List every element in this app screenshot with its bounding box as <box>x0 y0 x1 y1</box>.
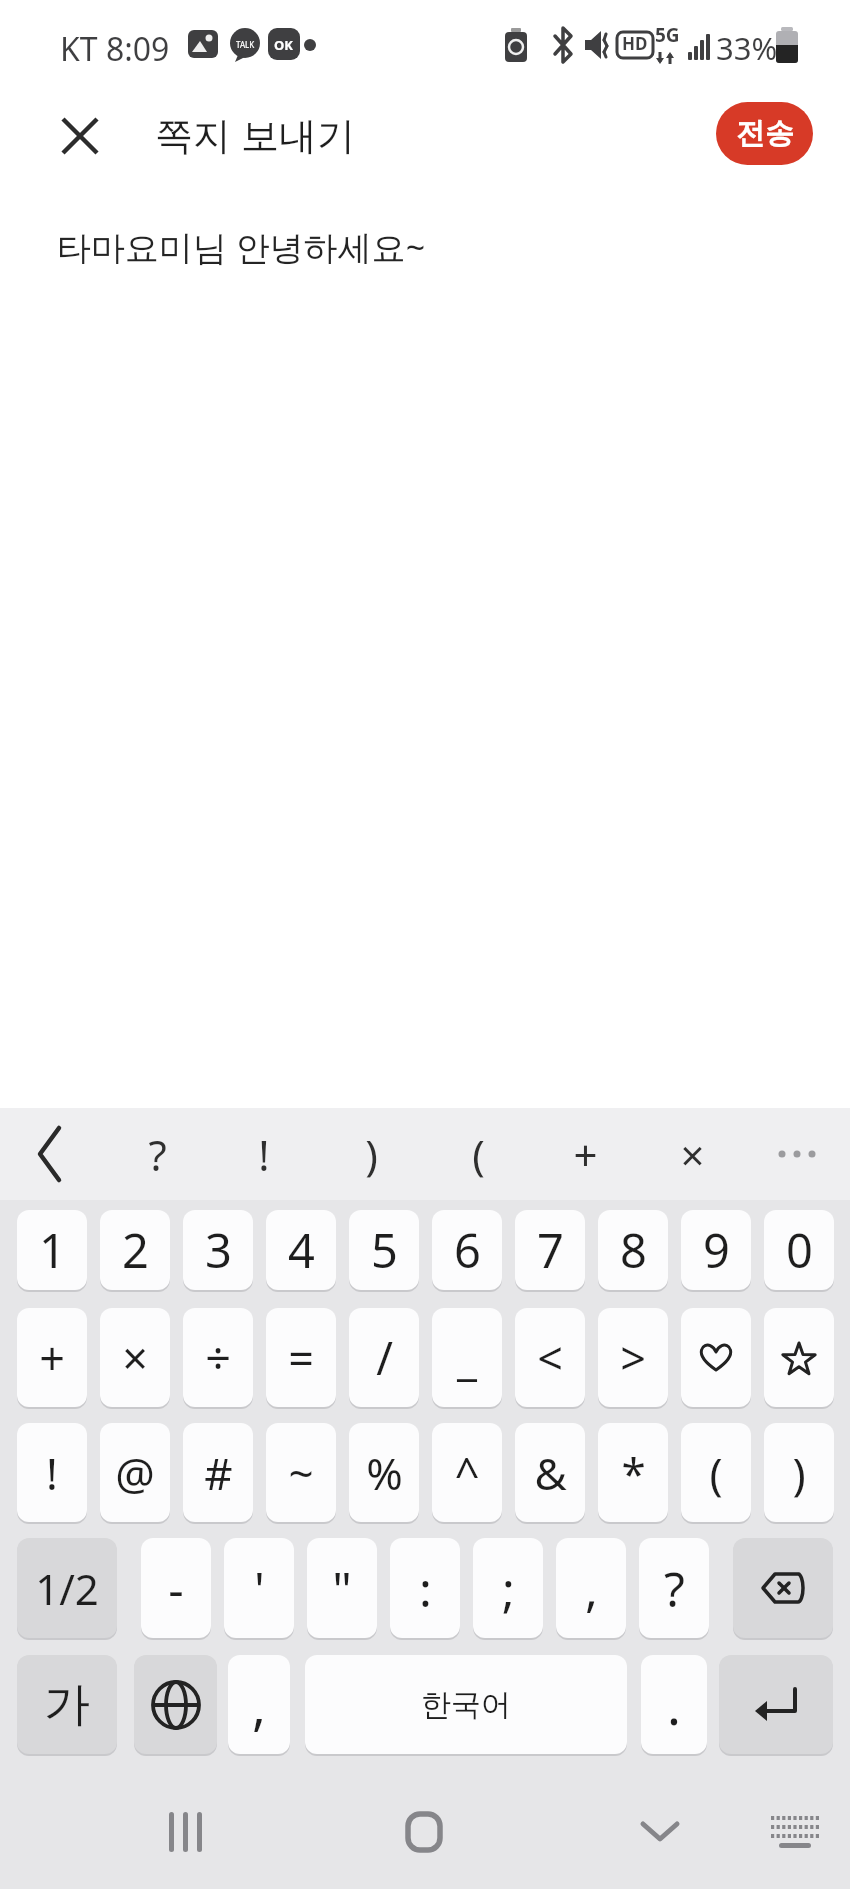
staticText: 8 <box>620 1218 647 1282</box>
button[interactable]: ? <box>639 1538 709 1638</box>
staticText: - <box>168 1556 184 1621</box>
button[interactable]: % <box>349 1423 419 1522</box>
button[interactable]: ( <box>442 1118 514 1190</box>
button[interactable]: 가 <box>17 1655 117 1754</box>
staticText: > <box>620 1327 646 1388</box>
button[interactable]: + <box>549 1118 621 1190</box>
button[interactable] <box>755 1792 835 1872</box>
button[interactable]: > <box>598 1308 668 1407</box>
button[interactable]: ~ <box>266 1423 336 1522</box>
button[interactable]: : <box>390 1538 460 1638</box>
button[interactable] <box>620 1792 700 1872</box>
button[interactable]: ) <box>764 1423 834 1522</box>
staticText: 5 <box>371 1218 398 1282</box>
staticText: @ <box>115 1443 155 1503</box>
staticText: ~ <box>288 1443 314 1503</box>
staticText: × <box>680 1126 705 1183</box>
button[interactable] <box>681 1308 751 1407</box>
staticText: 1/2 <box>35 1560 99 1617</box>
staticText: ( <box>472 1126 485 1183</box>
button[interactable]: ? <box>121 1118 193 1190</box>
button[interactable]: ; <box>473 1538 543 1638</box>
button[interactable] <box>384 1792 464 1872</box>
button[interactable]: 0 <box>764 1210 834 1290</box>
button[interactable]: / <box>349 1308 419 1407</box>
button[interactable] <box>146 1792 226 1872</box>
button[interactable]: - <box>141 1538 211 1638</box>
staticText: * <box>621 1443 646 1503</box>
staticText: ' <box>254 1556 265 1621</box>
button[interactable]: 4 <box>266 1210 336 1290</box>
button[interactable]: × <box>656 1118 728 1190</box>
button[interactable]: _ <box>432 1308 502 1407</box>
staticText: 4 <box>288 1218 315 1282</box>
staticText: 9 <box>703 1218 730 1282</box>
staticText: ) <box>792 1443 806 1503</box>
button[interactable]: = <box>266 1308 336 1407</box>
button[interactable]: . <box>641 1655 707 1754</box>
staticText: _ <box>457 1327 477 1388</box>
button[interactable]: 6 <box>432 1210 502 1290</box>
button[interactable]: 1/2 <box>17 1538 117 1638</box>
button[interactable]: & <box>515 1423 585 1522</box>
button[interactable]: 5 <box>349 1210 419 1290</box>
button[interactable]: , <box>228 1655 290 1754</box>
button[interactable]: ! <box>17 1423 87 1522</box>
button[interactable]: " <box>307 1538 377 1638</box>
button[interactable] <box>719 1655 833 1754</box>
button[interactable]: ! <box>228 1118 300 1190</box>
staticText: < <box>537 1327 563 1388</box>
staticText: TALK <box>236 39 255 50</box>
button[interactable] <box>134 1655 217 1754</box>
button[interactable] <box>733 1538 833 1638</box>
staticText: 타마요미님 안녕하세요~ <box>57 224 426 270</box>
button[interactable]: # <box>183 1423 253 1522</box>
button[interactable]: 2 <box>100 1210 170 1290</box>
button[interactable]: 7 <box>515 1210 585 1290</box>
staticText: OK <box>274 36 293 54</box>
button[interactable]: 1 <box>17 1210 87 1290</box>
staticText: # <box>204 1443 233 1503</box>
staticText: ( <box>709 1443 723 1503</box>
button[interactable]: 3 <box>183 1210 253 1290</box>
button[interactable] <box>52 108 108 164</box>
button[interactable]: < <box>515 1308 585 1407</box>
button[interactable] <box>764 1308 834 1407</box>
button[interactable]: ) <box>335 1118 407 1190</box>
staticText: , <box>252 1669 266 1740</box>
button[interactable]: ( <box>681 1423 751 1522</box>
staticText: & <box>534 1443 567 1503</box>
button[interactable] <box>14 1118 86 1190</box>
staticText: : <box>419 1556 432 1621</box>
staticText: 가 <box>44 1676 90 1734</box>
button[interactable]: ' <box>224 1538 294 1638</box>
staticText: ? <box>148 1126 167 1183</box>
staticText: 6 <box>454 1218 481 1282</box>
button[interactable] <box>761 1118 833 1190</box>
staticText: 0 <box>786 1218 813 1282</box>
button[interactable]: * <box>598 1423 668 1522</box>
button[interactable]: 한국어 <box>305 1655 627 1754</box>
staticText: 1 <box>39 1218 66 1282</box>
staticText: = <box>288 1327 314 1388</box>
button[interactable]: , <box>556 1538 626 1638</box>
button[interactable]: 전송 <box>716 102 813 165</box>
button[interactable]: ^ <box>432 1423 502 1522</box>
staticText: + <box>573 1126 598 1183</box>
staticText: 33% <box>716 27 778 69</box>
staticText: 한국어 <box>421 1686 511 1724</box>
button[interactable]: 9 <box>681 1210 751 1290</box>
staticText: HD <box>622 32 648 55</box>
staticText: ) <box>365 1126 378 1183</box>
button[interactable]: ÷ <box>183 1308 253 1407</box>
staticText: 7 <box>537 1218 564 1282</box>
staticText: 5G <box>655 22 680 48</box>
button[interactable]: 8 <box>598 1210 668 1290</box>
staticText: KT 8:09 <box>60 27 170 71</box>
button[interactable]: @ <box>100 1423 170 1522</box>
staticText: 2 <box>122 1218 149 1282</box>
button[interactable]: + <box>17 1308 87 1407</box>
button[interactable]: × <box>100 1308 170 1407</box>
staticText: ; <box>502 1556 515 1621</box>
staticText: , <box>585 1556 598 1621</box>
